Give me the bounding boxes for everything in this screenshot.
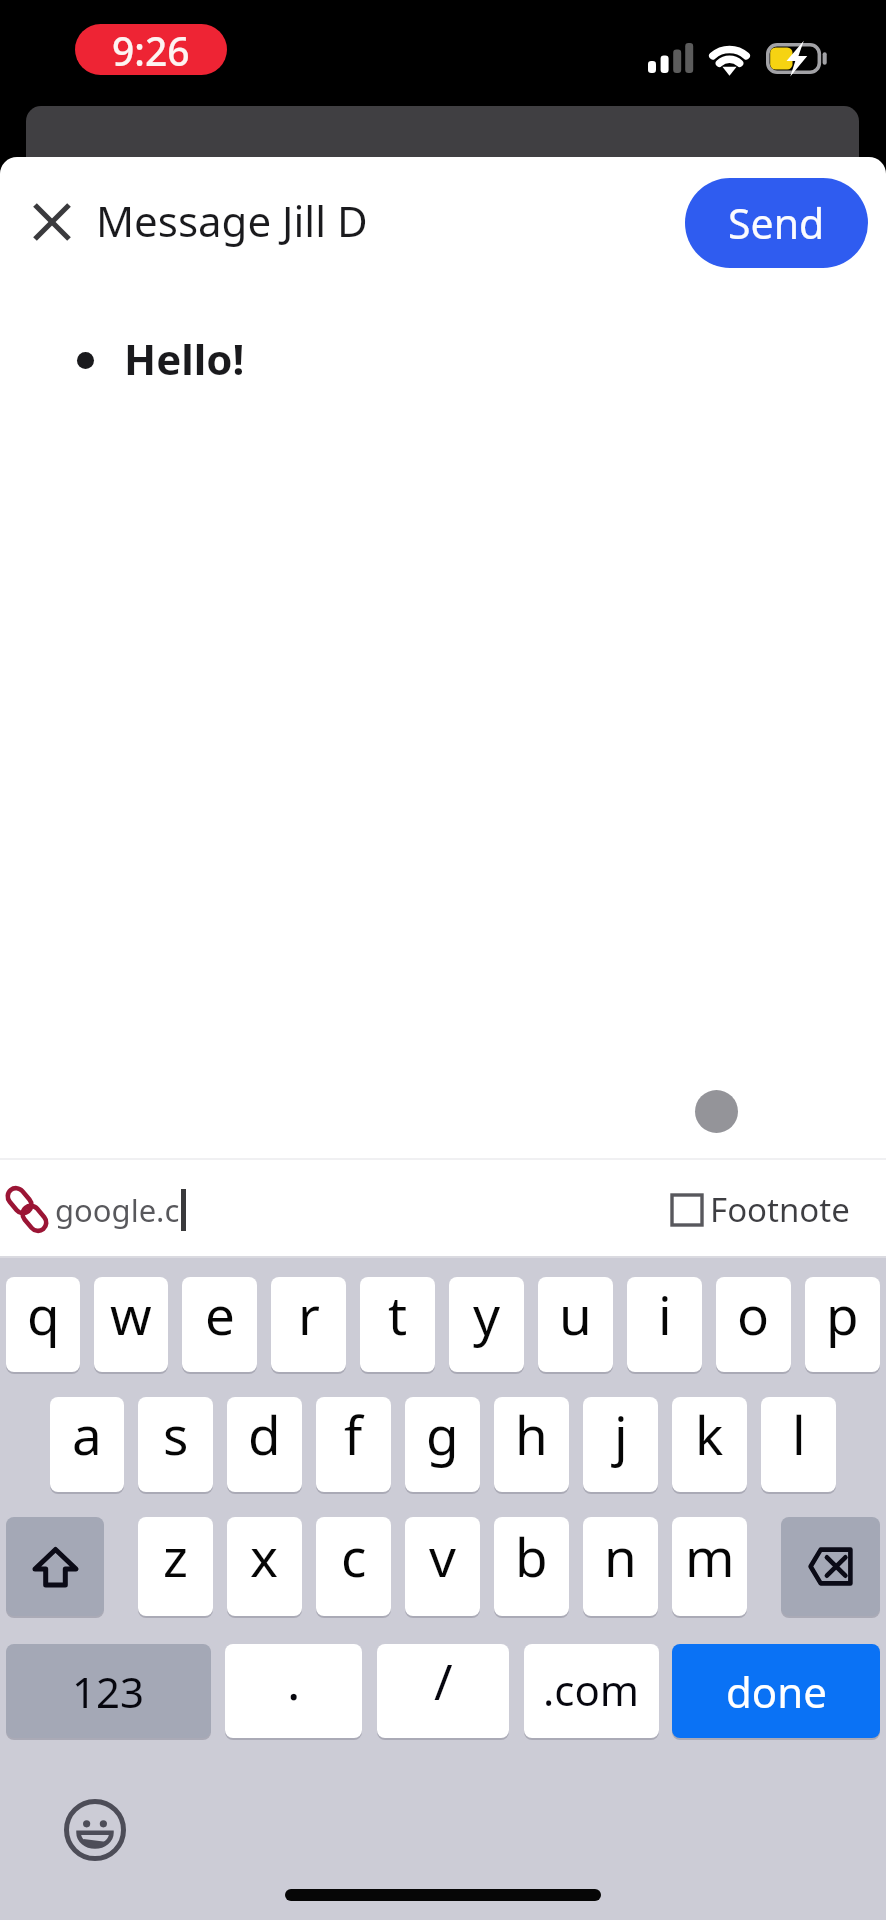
button[interactable]: o (716, 1277, 791, 1372)
staticText: j (614, 1398, 628, 1470)
button[interactable]: j (583, 1397, 658, 1492)
button[interactable]: k (672, 1397, 747, 1492)
staticText: r (298, 1278, 320, 1350)
staticText: y (473, 1278, 501, 1350)
staticText: s (163, 1398, 189, 1470)
button[interactable]: c (316, 1517, 391, 1616)
staticText: . (287, 1647, 301, 1715)
button[interactable]: m (672, 1517, 747, 1616)
staticText: m (685, 1520, 735, 1592)
staticText: .com (543, 1661, 640, 1718)
button[interactable]: Backspace (781, 1517, 880, 1616)
button[interactable]: n (583, 1517, 658, 1616)
button[interactable]: done (672, 1644, 880, 1738)
button[interactable]: b (494, 1517, 569, 1616)
staticText: l (792, 1398, 806, 1470)
button[interactable]: v (405, 1517, 480, 1616)
button[interactable]: . (225, 1644, 362, 1738)
staticText: google.c (55, 1189, 180, 1231)
staticText: w (110, 1278, 152, 1350)
staticText: b (515, 1520, 548, 1592)
button[interactable]: d (227, 1397, 302, 1492)
staticText: Send (728, 195, 825, 251)
button[interactable]: Emoji (64, 1799, 126, 1861)
staticText: t (388, 1278, 408, 1350)
staticText: 123 (72, 1663, 145, 1720)
staticText: c (341, 1520, 367, 1592)
button[interactable]: h (494, 1397, 569, 1492)
button[interactable]: e (182, 1277, 257, 1372)
button[interactable]: i (627, 1277, 702, 1372)
button[interactable]: p (805, 1277, 880, 1372)
button[interactable]: a (50, 1397, 124, 1492)
button[interactable]: u (538, 1277, 613, 1372)
staticText: v (429, 1520, 456, 1592)
staticText: d (248, 1398, 281, 1470)
staticText: z (163, 1520, 188, 1592)
button[interactable]: z (138, 1517, 213, 1616)
staticText: done (726, 1663, 827, 1720)
button[interactable]: q (6, 1277, 80, 1372)
staticText: h (515, 1398, 548, 1470)
staticText: Footnote (710, 1187, 850, 1232)
button[interactable]: Close (14, 184, 90, 260)
button[interactable]: Footnote (672, 1187, 850, 1232)
button[interactable]: .com (524, 1644, 659, 1738)
button[interactable]: w (94, 1277, 168, 1372)
staticText: Hello! (124, 330, 245, 387)
staticText: f (344, 1398, 363, 1470)
button[interactable]: g (405, 1397, 480, 1492)
button[interactable]: Shift (6, 1517, 104, 1616)
staticText: e (205, 1278, 235, 1350)
staticText: / (434, 1647, 453, 1715)
staticText: u (559, 1278, 592, 1350)
staticText: Message Jill D (96, 192, 368, 249)
button[interactable]: Send (685, 178, 868, 268)
staticText: a (72, 1398, 102, 1470)
staticText: q (27, 1278, 60, 1350)
button[interactable]: t (360, 1277, 435, 1372)
staticText: g (426, 1398, 459, 1470)
staticText: o (737, 1278, 770, 1350)
staticText: 9:26 (112, 24, 190, 72)
staticText: k (695, 1398, 724, 1470)
button[interactable]: f (316, 1397, 391, 1492)
staticText: x (250, 1520, 279, 1592)
button[interactable]: y (449, 1277, 524, 1372)
button[interactable]: l (761, 1397, 836, 1492)
button[interactable]: / (377, 1644, 509, 1738)
button[interactable]: x (227, 1517, 302, 1616)
button[interactable]: r (271, 1277, 346, 1372)
button[interactable]: s (138, 1397, 213, 1492)
staticText: p (826, 1278, 859, 1350)
staticText: i (658, 1278, 672, 1350)
staticText: n (604, 1520, 637, 1592)
button[interactable]: 123 (6, 1644, 211, 1738)
